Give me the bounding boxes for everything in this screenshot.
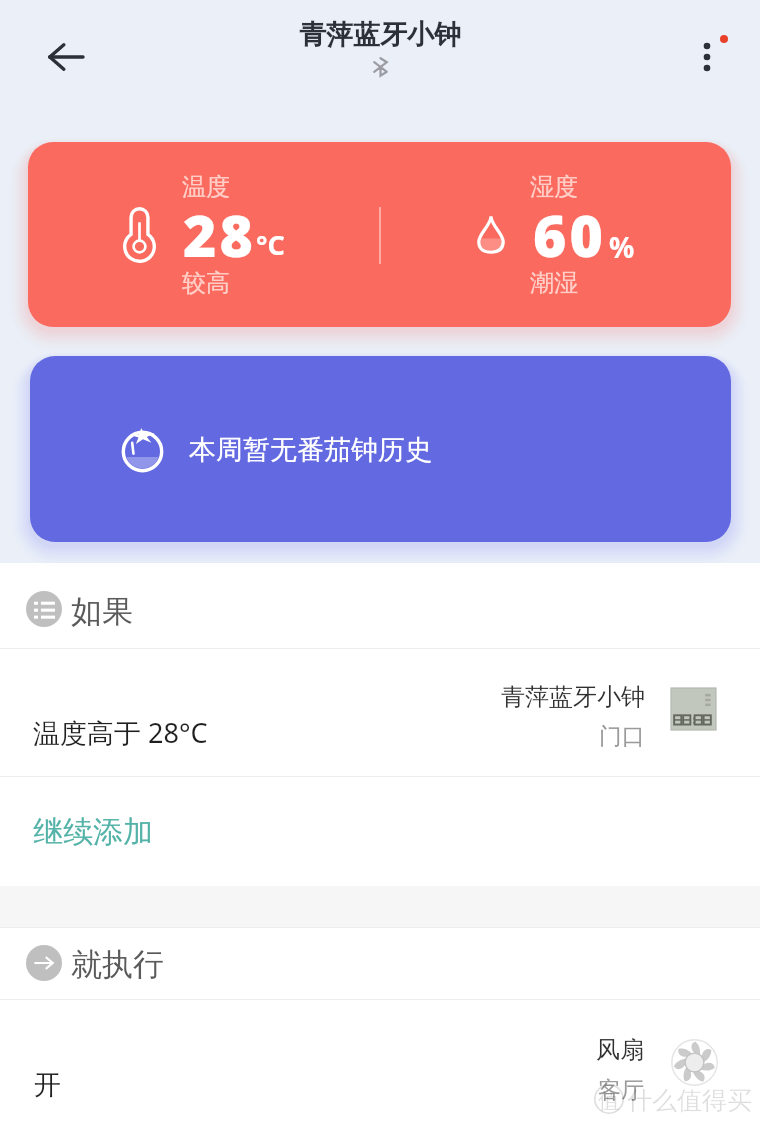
staticText: 风扇: [596, 1035, 644, 1065]
button[interactable]: 温度高于 28°C: [0, 649, 760, 776]
staticText: %: [609, 228, 635, 266]
staticText: 就执行: [71, 945, 164, 984]
button[interactable]: 开: [0, 1000, 760, 1124]
button[interactable]: Back: [37, 28, 95, 86]
staticText: 青萍蓝牙小钟: [501, 682, 645, 712]
staticText: 潮湿: [530, 268, 578, 298]
staticText: 较高: [182, 268, 230, 298]
staticText: 60: [533, 196, 606, 274]
staticText: 门口: [599, 722, 645, 751]
button[interactable]: 继续添加: [0, 777, 760, 886]
staticText: 客厅: [598, 1076, 644, 1105]
staticText: 继续添加: [33, 813, 153, 851]
staticText: °C: [256, 226, 285, 263]
staticText: 如果: [71, 592, 133, 631]
staticText: 什么值得买: [627, 1085, 752, 1116]
button[interactable]: More options: [679, 12, 737, 92]
staticText: 湿度: [530, 172, 578, 202]
button[interactable]: 就执行: [0, 928, 760, 999]
button[interactable]: 如果: [0, 563, 760, 648]
staticText: 温度高于 28°C: [33, 714, 208, 751]
staticText: 本周暂无番茄钟历史: [189, 433, 432, 467]
button[interactable]: 本周暂无番茄钟历史: [30, 356, 731, 542]
staticText: 温度: [182, 172, 230, 202]
staticText: 值: [598, 1087, 620, 1115]
staticText: 青萍蓝牙小钟: [299, 18, 461, 52]
staticText: 28: [183, 196, 256, 274]
button[interactable]: 温度: [28, 142, 731, 327]
staticText: 开: [34, 1068, 61, 1102]
